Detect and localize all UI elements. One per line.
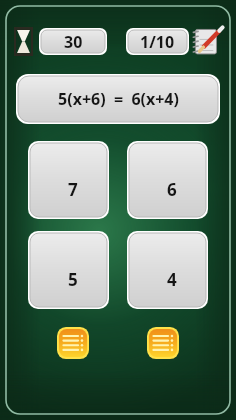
- button[interactable]: 5: [28, 231, 109, 309]
- button[interactable]: 4: [127, 231, 208, 309]
- staticText: 5: [68, 268, 78, 291]
- staticText: 1/10: [140, 31, 175, 53]
- button[interactable]: 5(x+6) = 6(x+4): [16, 74, 220, 124]
- button[interactable]: Show hint list: [57, 327, 89, 359]
- button[interactable]: 1/10: [126, 28, 189, 55]
- button[interactable]: Show answer list: [147, 327, 179, 359]
- other: Timer: [14, 27, 33, 56]
- button[interactable]: 7: [28, 141, 109, 219]
- button[interactable]: Notepad: [192, 24, 226, 58]
- staticText: 5(x+6) = 6(x+4): [58, 88, 179, 110]
- button[interactable]: 30: [39, 28, 107, 55]
- staticText: 4: [167, 268, 177, 291]
- staticText: 7: [68, 178, 78, 201]
- button[interactable]: 6: [127, 141, 208, 219]
- staticText: 6: [167, 178, 177, 201]
- staticText: 30: [64, 31, 83, 53]
